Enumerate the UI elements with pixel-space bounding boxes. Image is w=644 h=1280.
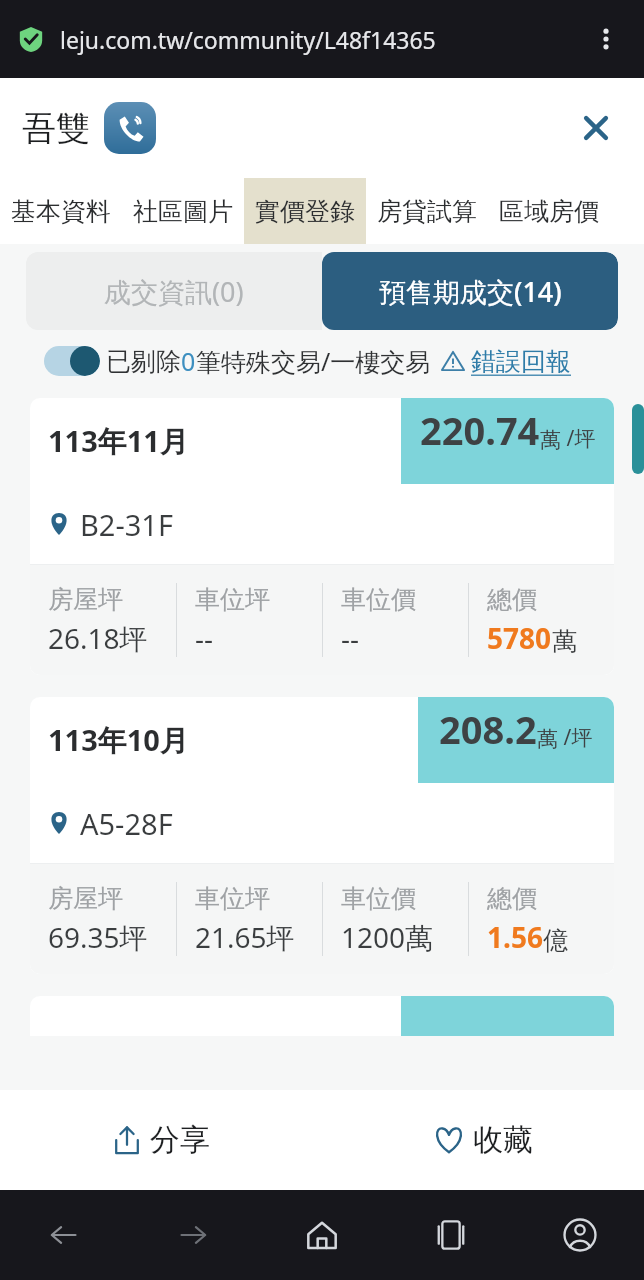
staticText: 1.56 <box>487 918 543 956</box>
staticText: 萬 <box>537 726 558 752</box>
staticText: B2-31F <box>80 505 174 544</box>
staticText: 房屋坪 <box>48 584 123 615</box>
button[interactable]: 分享 <box>0 1090 322 1190</box>
button[interactable]: Forward <box>128 1190 257 1280</box>
staticText: 69.35坪 <box>48 918 148 956</box>
staticText: 房屋坪 <box>48 883 123 914</box>
staticText: -- <box>341 619 360 657</box>
button[interactable]: Call <box>104 102 156 154</box>
staticText: 21.65坪 <box>195 918 295 956</box>
button[interactable]: 成交資訊(0) <box>26 252 322 330</box>
button[interactable]: 實價登錄 <box>244 178 366 244</box>
staticText: 1200萬 <box>341 918 434 956</box>
button[interactable]: 房貸試算 <box>366 178 488 244</box>
staticText: 5780 <box>487 619 552 657</box>
button[interactable]: Tabs <box>386 1190 515 1280</box>
staticText: A5-28F <box>80 804 173 843</box>
staticText: 筆特殊交易/一樓交易 <box>196 344 431 378</box>
button[interactable]: Profile <box>515 1190 644 1280</box>
staticText: 車位價 <box>341 584 416 615</box>
button[interactable]: Home <box>257 1190 386 1280</box>
staticText: 208.2 <box>439 703 537 755</box>
staticText: 26.18坪 <box>48 619 148 657</box>
staticText: /坪 <box>558 723 593 752</box>
staticText: 錯誤回報 <box>471 346 571 377</box>
staticText: 220.74 <box>420 404 540 456</box>
button[interactable]: More options <box>586 19 626 59</box>
staticText: 車位坪 <box>195 584 270 615</box>
staticText: 萬 <box>552 626 577 657</box>
button[interactable]: 208.2 <box>30 697 614 974</box>
staticText: 0 <box>181 344 196 378</box>
staticText: 社區圖片 <box>133 196 233 227</box>
staticText: 總價 <box>487 883 537 914</box>
staticText: /坪 <box>561 424 596 453</box>
staticText: 分享 <box>150 1121 210 1159</box>
staticText: 成交資訊(0) <box>104 273 244 310</box>
button[interactable]: 220.74 <box>30 398 614 675</box>
staticText: 預售期成交(14) <box>379 273 562 310</box>
staticText: 吾雙 <box>22 107 90 150</box>
staticText: 總價 <box>487 584 537 615</box>
other: Secure <box>18 26 44 52</box>
staticText: leju.com.tw/community/L48f14365 <box>60 24 578 55</box>
button[interactable]: 區域房價 <box>488 178 610 244</box>
button[interactable]: 基本資料 <box>0 178 122 244</box>
button[interactable]: 錯誤回報 <box>471 346 571 377</box>
staticText: 113年11月 <box>48 421 189 461</box>
staticText: 車位價 <box>341 883 416 914</box>
staticText: 已剔除 <box>106 346 181 377</box>
staticText: 收藏 <box>473 1121 533 1159</box>
button[interactable]: Toggle filter <box>44 346 100 376</box>
staticText: 億 <box>543 925 568 956</box>
button[interactable]: Close <box>572 104 620 152</box>
button[interactable]: Back <box>0 1190 128 1280</box>
staticText: 房貸試算 <box>377 196 477 227</box>
staticText: 113年10月 <box>48 720 189 760</box>
staticText: 基本資料 <box>11 196 111 227</box>
staticText: 區域房價 <box>499 196 599 227</box>
button[interactable]: 社區圖片 <box>122 178 244 244</box>
staticText: 車位坪 <box>195 883 270 914</box>
button[interactable] <box>30 996 614 1036</box>
staticText: 實價登錄 <box>255 196 355 227</box>
button[interactable]: 預售期成交(14) <box>322 252 618 330</box>
button[interactable]: 收藏 <box>322 1090 644 1190</box>
staticText: 萬 <box>540 427 561 453</box>
staticText: -- <box>195 619 214 657</box>
